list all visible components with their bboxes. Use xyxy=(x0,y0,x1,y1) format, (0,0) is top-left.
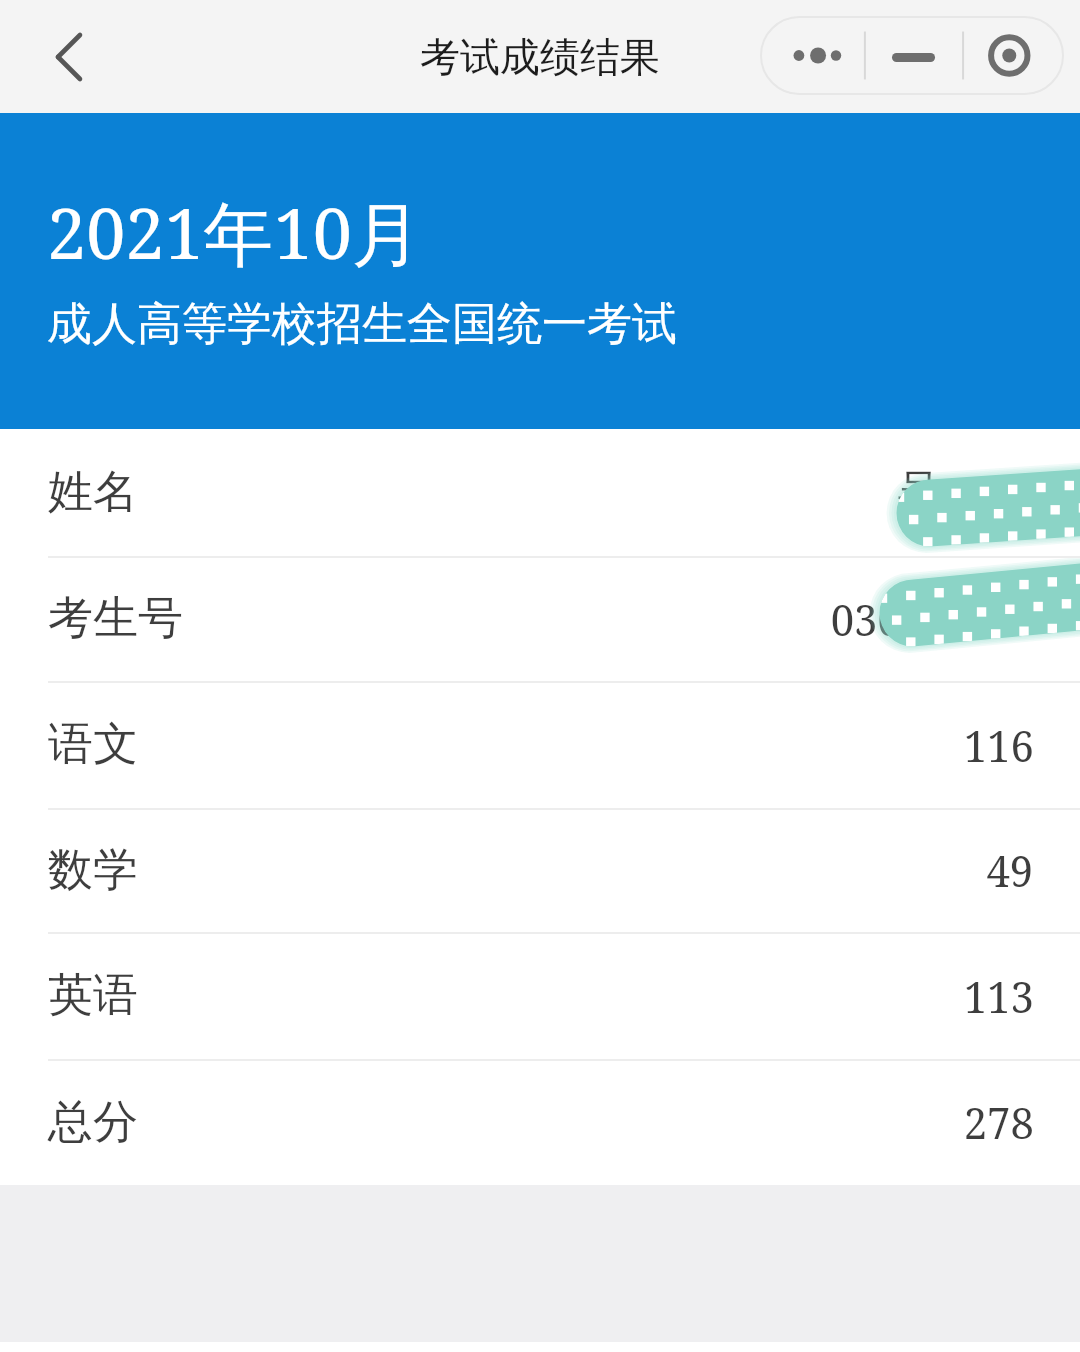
staticText: 030 xyxy=(831,589,901,649)
button[interactable]: 总分 xyxy=(0,1059,1080,1185)
staticText: 2021年10月 xyxy=(47,184,422,280)
staticText: 113 xyxy=(964,966,1034,1026)
staticText: 49 xyxy=(986,840,1034,900)
staticText: 数学 xyxy=(48,842,138,899)
staticText: 考试成绩结果 xyxy=(420,32,660,82)
staticText: 英语 xyxy=(48,967,138,1024)
button[interactable]: 数学 xyxy=(0,808,1080,932)
staticText: 考生号 xyxy=(48,590,183,647)
staticText: 278 xyxy=(964,1092,1034,1152)
button[interactable]: 考生号 xyxy=(0,556,1080,681)
staticText: 总分 xyxy=(48,1094,138,1151)
staticText: 语文 xyxy=(48,716,138,773)
button[interactable]: Back xyxy=(0,1,112,113)
staticText: 吴 xyxy=(896,464,941,521)
staticText: 姓名 xyxy=(48,464,138,521)
button[interactable]: 语文 xyxy=(0,681,1080,808)
button[interactable]: More options and close xyxy=(760,16,1064,95)
staticText: 116 xyxy=(964,715,1034,775)
button[interactable]: 姓名 xyxy=(0,429,1080,556)
staticText: 成人高等学校招生全国统一考试 xyxy=(47,296,677,353)
button[interactable]: 英语 xyxy=(0,932,1080,1059)
